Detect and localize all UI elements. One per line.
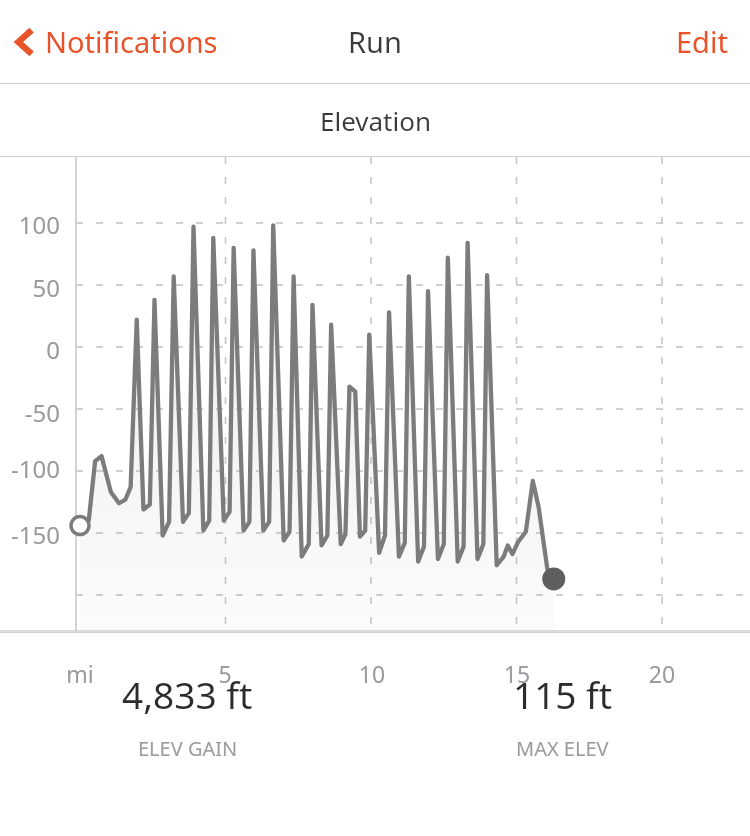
staticText: -150 — [0, 518, 60, 551]
staticText: Edit — [676, 22, 728, 61]
staticText: 50 — [0, 271, 60, 304]
staticText: mi — [45, 658, 115, 689]
staticText: 115 ft — [513, 669, 613, 719]
staticText: 20 — [627, 658, 697, 689]
staticText: -100 — [0, 452, 60, 485]
staticText: 100 — [0, 208, 60, 241]
staticText: Notifications — [45, 22, 218, 61]
button[interactable]: 115 ft — [375, 633, 750, 762]
staticText: -50 — [0, 396, 60, 429]
staticText: Elevation — [320, 103, 431, 138]
staticText: 15 — [482, 658, 552, 689]
staticText: 0 — [0, 333, 60, 366]
other: Back — [14, 26, 36, 58]
staticText: 10 — [337, 658, 407, 689]
staticText: MAX ELEV — [516, 735, 609, 762]
button[interactable]: 4,833 ft — [0, 633, 375, 762]
button[interactable]: Back — [0, 12, 230, 71]
staticText: Run — [348, 22, 402, 61]
button[interactable]: Edit — [654, 10, 750, 73]
staticText: 4,833 ft — [122, 669, 253, 719]
staticText: 5 — [190, 658, 260, 689]
staticText: ELEV GAIN — [138, 735, 238, 762]
